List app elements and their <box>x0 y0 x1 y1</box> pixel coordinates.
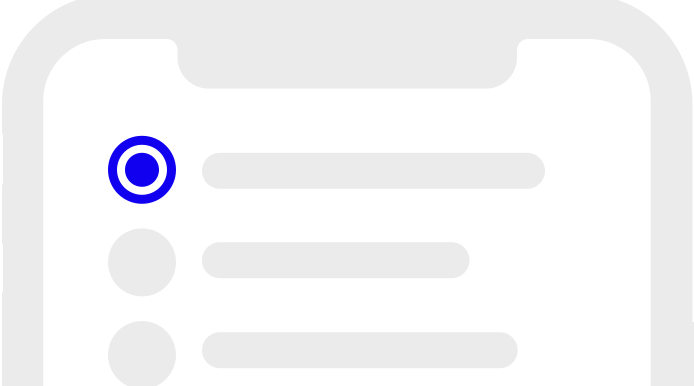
button[interactable]: Option <box>0 0 694 386</box>
button[interactable]: Option <box>0 0 694 386</box>
button[interactable]: Selected option <box>0 0 694 386</box>
